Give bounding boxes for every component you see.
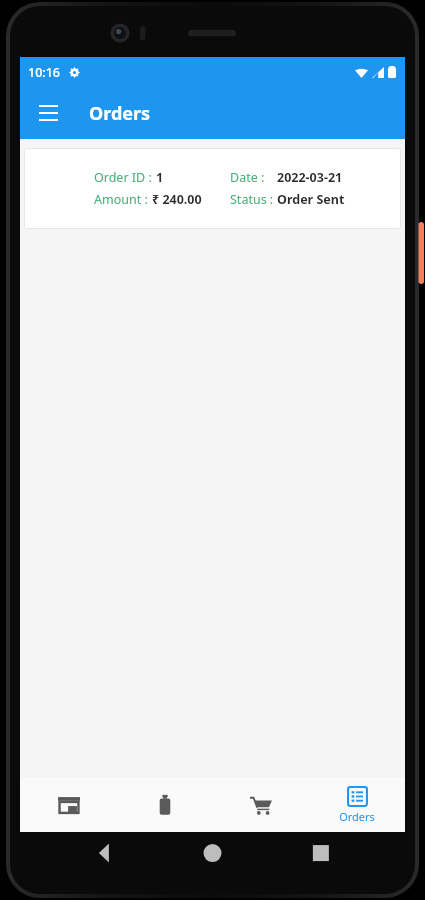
button[interactable]: Cart [213, 778, 309, 832]
staticText: 2022-03-21 [277, 169, 343, 186]
button[interactable]: Order ID : [24, 148, 401, 229]
button[interactable]: Store [20, 778, 117, 832]
staticText: 10:16 [28, 64, 61, 81]
button[interactable]: Open navigation menu [28, 93, 68, 133]
staticText: Date : [230, 169, 268, 186]
staticText: 1 [156, 169, 164, 186]
button[interactable]: Products [117, 778, 213, 832]
button[interactable]: Orders [309, 778, 405, 832]
staticText: Orders [339, 809, 375, 824]
staticText: Status : [230, 191, 277, 208]
staticText: Orders [89, 101, 151, 126]
staticText: Order ID : [94, 169, 156, 186]
staticText: Order Sent [277, 191, 345, 208]
staticText: Amount : [94, 191, 152, 208]
staticText: ₹ 240.00 [152, 191, 202, 208]
